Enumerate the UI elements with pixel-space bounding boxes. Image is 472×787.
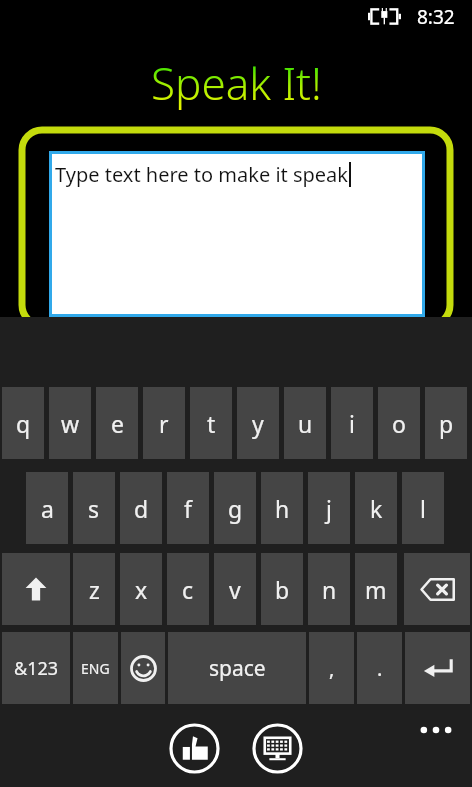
button[interactable]: s xyxy=(73,472,115,544)
staticText: m xyxy=(365,574,387,605)
button[interactable]: x xyxy=(120,553,162,625)
staticText: z xyxy=(89,574,100,605)
staticText: w xyxy=(61,408,80,439)
button[interactable]: j xyxy=(308,472,350,544)
button[interactable]: n xyxy=(308,553,350,625)
button[interactable]: Speak xyxy=(169,723,220,774)
staticText: o xyxy=(392,408,406,439)
staticText: a xyxy=(41,493,54,524)
staticText: e xyxy=(111,408,124,439)
button[interactable]: More options xyxy=(412,717,460,743)
button[interactable]: ENG xyxy=(73,632,118,704)
button[interactable]: . xyxy=(357,632,402,704)
button[interactable]: i xyxy=(331,387,373,459)
staticText: u xyxy=(298,408,313,439)
staticText: y xyxy=(252,408,264,439)
button[interactable]: o xyxy=(378,387,420,459)
staticText: p xyxy=(439,408,454,439)
button[interactable]: &123 xyxy=(2,632,70,704)
staticText: v xyxy=(229,574,241,605)
button[interactable]: z xyxy=(73,553,115,625)
button[interactable]: w xyxy=(49,387,91,459)
staticText: f xyxy=(184,493,192,524)
button[interactable]: m xyxy=(355,553,397,625)
button[interactable]: l xyxy=(402,472,444,544)
staticText: i xyxy=(349,408,355,439)
staticText: r xyxy=(159,408,169,439)
staticText: space xyxy=(209,654,266,683)
button[interactable]: Shift xyxy=(2,553,70,625)
button[interactable]: h xyxy=(261,472,303,544)
staticText: q xyxy=(16,408,31,439)
staticText: . xyxy=(377,655,383,682)
button[interactable]: k xyxy=(355,472,397,544)
button[interactable]: a xyxy=(26,472,68,544)
button[interactable]: v xyxy=(214,553,256,625)
staticText: b xyxy=(275,574,290,605)
button[interactable]: g xyxy=(214,472,256,544)
button[interactable]: p xyxy=(425,387,467,459)
button[interactable]: b xyxy=(261,553,303,625)
staticText: j xyxy=(326,493,332,524)
staticText: g xyxy=(228,493,243,524)
button[interactable]: Keyboard xyxy=(252,723,303,774)
staticText: Type text here to make it speak xyxy=(55,161,349,188)
button[interactable]: Emoji xyxy=(121,632,165,704)
staticText: x xyxy=(135,574,148,605)
button[interactable]: Backspace xyxy=(404,553,470,625)
staticText: ENG xyxy=(81,659,110,678)
button[interactable]: e xyxy=(96,387,138,459)
staticText: d xyxy=(134,493,149,524)
staticText: &123 xyxy=(14,656,59,681)
staticText: c xyxy=(182,574,194,605)
button[interactable]: , xyxy=(309,632,354,704)
staticText: k xyxy=(370,493,383,524)
button[interactable]: Enter xyxy=(405,632,470,704)
staticText: Speak It! xyxy=(151,53,322,113)
staticText: 8:32 xyxy=(417,4,455,30)
staticText: n xyxy=(322,574,337,605)
button[interactable]: q xyxy=(2,387,44,459)
staticText: t xyxy=(207,408,216,439)
button[interactable]: y xyxy=(237,387,279,459)
staticText: s xyxy=(88,493,100,524)
button[interactable]: r xyxy=(143,387,185,459)
staticText: h xyxy=(275,493,290,524)
button[interactable]: f xyxy=(167,472,209,544)
staticText: , xyxy=(329,655,335,682)
button[interactable]: space xyxy=(168,632,306,704)
button[interactable]: u xyxy=(284,387,326,459)
staticText: l xyxy=(420,493,426,524)
button[interactable]: Type text here to make it speak xyxy=(52,154,422,314)
button[interactable]: t xyxy=(190,387,232,459)
button[interactable]: d xyxy=(120,472,162,544)
button[interactable]: c xyxy=(167,553,209,625)
